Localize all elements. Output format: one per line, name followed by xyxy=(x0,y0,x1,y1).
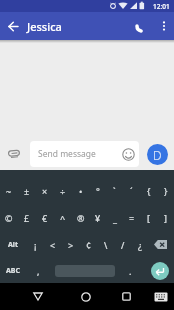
button[interactable] xyxy=(154,12,174,40)
button[interactable]: ¥ xyxy=(89,204,106,231)
staticText: ¥ xyxy=(95,212,101,224)
staticText: ´ xyxy=(130,185,133,197)
staticText: { xyxy=(147,185,151,197)
staticText: D xyxy=(153,147,162,163)
button[interactable]: { xyxy=(140,177,157,204)
staticText: } xyxy=(164,185,168,197)
button[interactable]: ® xyxy=(72,204,89,231)
button[interactable]: • xyxy=(72,177,89,204)
button[interactable] xyxy=(114,283,138,310)
staticText: ± xyxy=(24,185,30,197)
staticText: ] xyxy=(164,212,167,224)
staticText: © xyxy=(5,212,13,224)
button[interactable] xyxy=(26,283,50,310)
staticText: ÷ xyxy=(60,185,66,197)
staticText: Alt xyxy=(8,240,18,250)
button[interactable]: ´ xyxy=(123,177,140,204)
staticText: ~ xyxy=(6,185,12,197)
button[interactable]: / xyxy=(114,231,131,258)
button[interactable] xyxy=(117,141,139,167)
button[interactable]: D xyxy=(147,144,168,165)
button[interactable]: € xyxy=(36,204,54,231)
button[interactable]: ¡ xyxy=(26,231,44,258)
staticText: Send message xyxy=(38,148,96,160)
button[interactable]: > xyxy=(62,231,80,258)
button[interactable]: ~ xyxy=(0,177,18,204)
staticText: ° xyxy=(96,185,100,197)
button[interactable]: = xyxy=(123,204,140,231)
button[interactable]: ABC xyxy=(0,258,26,283)
button[interactable]: ¢ xyxy=(80,231,97,258)
button[interactable]: _ xyxy=(106,204,123,231)
button[interactable] xyxy=(145,258,174,283)
staticText: < xyxy=(50,239,56,251)
staticText: ` xyxy=(113,185,116,197)
staticText: \ xyxy=(104,239,108,251)
button[interactable]: Alt xyxy=(0,231,26,258)
button[interactable]: ] xyxy=(157,204,174,231)
button[interactable]: £ xyxy=(18,204,36,231)
button[interactable]: ^ xyxy=(54,204,72,231)
button[interactable] xyxy=(148,283,174,310)
button[interactable] xyxy=(0,12,26,40)
button[interactable]: . xyxy=(115,258,145,283)
staticText: £ xyxy=(24,212,30,224)
staticText: ABC xyxy=(6,266,20,276)
staticText: ® xyxy=(77,212,85,224)
button[interactable]: × xyxy=(36,177,54,204)
staticText: ^ xyxy=(60,212,66,224)
staticText: ¿ xyxy=(138,239,142,251)
button[interactable]: Send message xyxy=(30,141,139,167)
button[interactable]: ÷ xyxy=(54,177,72,204)
button[interactable]: \ xyxy=(97,231,114,258)
button[interactable] xyxy=(74,283,98,310)
button[interactable]: ° xyxy=(89,177,106,204)
staticText: . xyxy=(129,265,132,277)
staticText: [ xyxy=(147,212,150,224)
staticText: / xyxy=(121,239,125,251)
button[interactable]: [ xyxy=(140,204,157,231)
staticText: × xyxy=(42,185,48,197)
staticText: ¡ xyxy=(34,239,37,251)
staticText: = xyxy=(129,212,135,224)
staticText: _ xyxy=(113,212,117,224)
staticText: , xyxy=(37,265,40,277)
staticText: € xyxy=(42,212,48,224)
button[interactable]: , xyxy=(26,258,50,283)
button[interactable]: } xyxy=(157,177,174,204)
button[interactable]: ¿ xyxy=(131,231,148,258)
staticText: > xyxy=(68,239,74,251)
staticText: 12:01 xyxy=(153,2,170,11)
button[interactable]: © xyxy=(0,204,18,231)
button[interactable] xyxy=(130,12,154,40)
staticText: Jessica xyxy=(27,19,62,34)
button[interactable] xyxy=(0,141,28,167)
button[interactable]: ` xyxy=(106,177,123,204)
staticText: ¢ xyxy=(86,239,92,251)
staticText: • xyxy=(79,185,83,197)
button[interactable]: < xyxy=(44,231,62,258)
button[interactable]: ± xyxy=(18,177,36,204)
button[interactable] xyxy=(148,231,174,258)
